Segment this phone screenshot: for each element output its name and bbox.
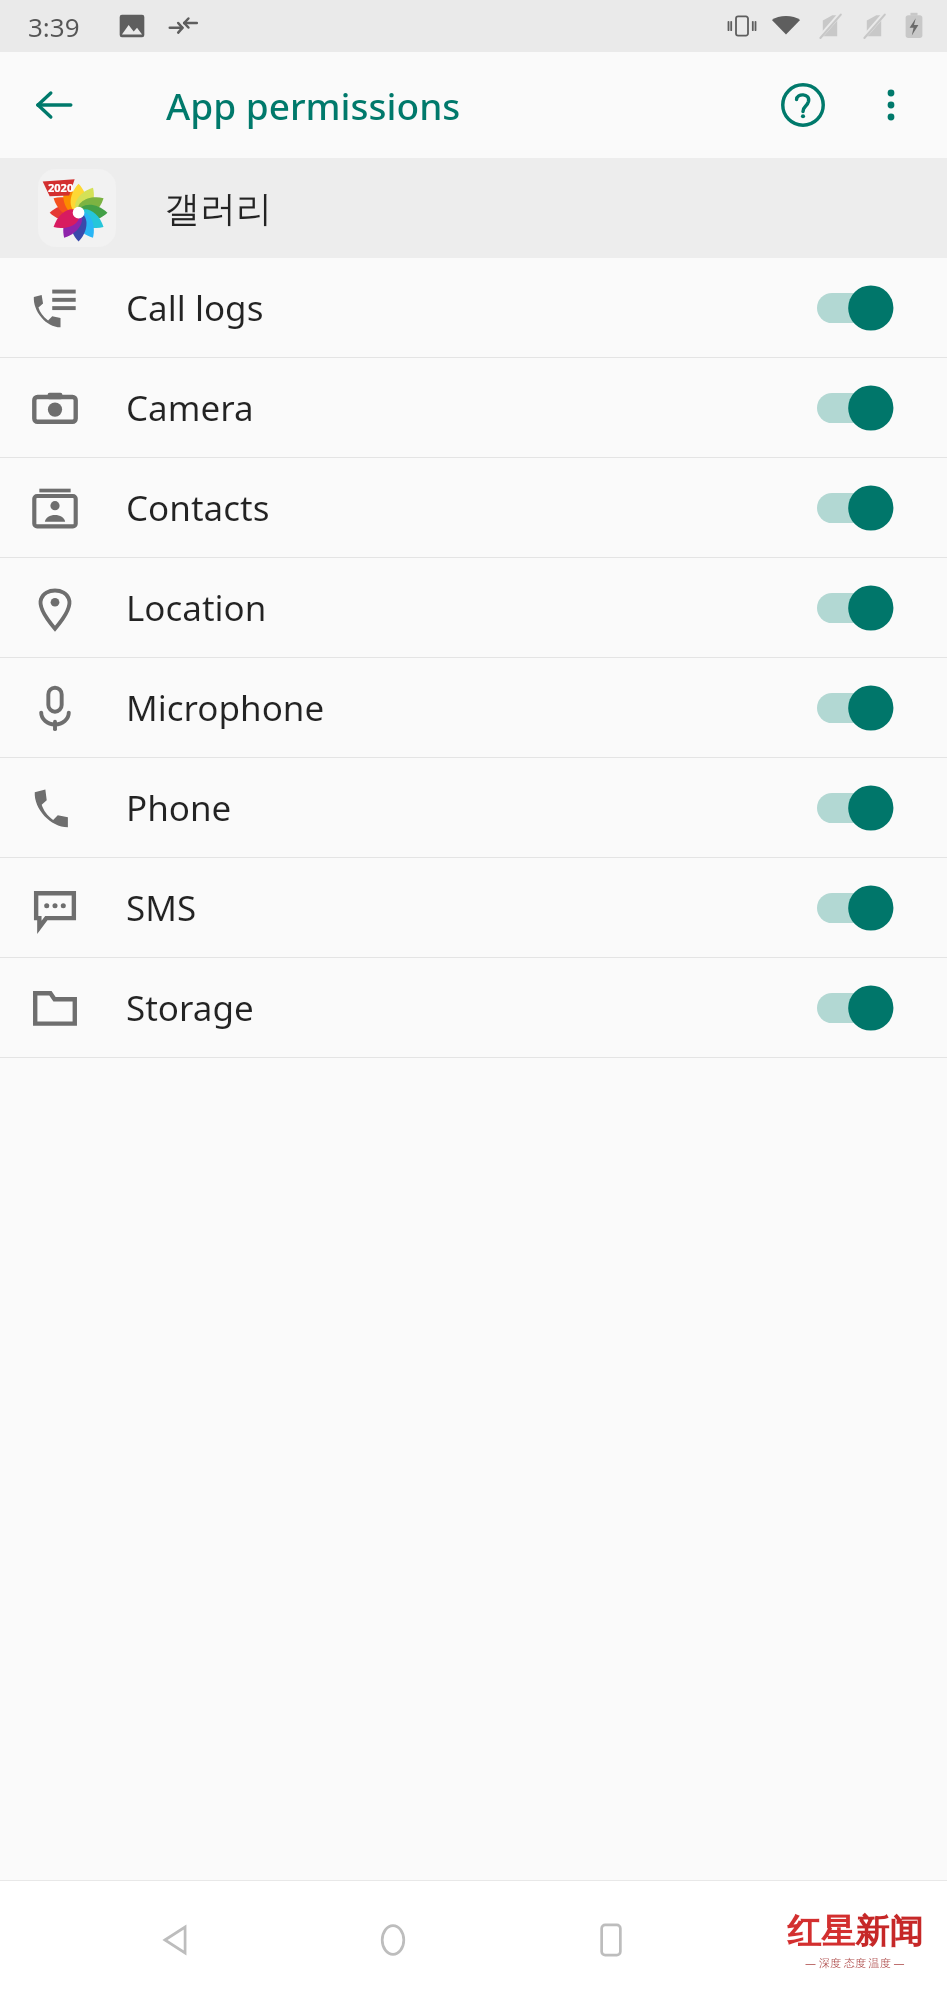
staticText: Phone (126, 784, 232, 832)
button[interactable]: More options (855, 69, 927, 141)
button[interactable]: Contacts (0, 458, 947, 557)
button[interactable]: Microphone (0, 658, 947, 757)
button[interactable] (817, 879, 909, 937)
button[interactable] (817, 979, 909, 1037)
staticText: Contacts (126, 484, 270, 532)
button[interactable]: Phone (0, 758, 947, 857)
button[interactable]: Back (133, 1898, 217, 1982)
staticText: App permissions (166, 80, 461, 130)
staticText: SMS (126, 884, 197, 932)
staticText: 갤러리 (164, 186, 272, 231)
staticText: Call logs (126, 284, 264, 332)
staticText: Storage (126, 984, 254, 1032)
button[interactable]: Call logs (0, 258, 947, 357)
button[interactable] (817, 779, 909, 837)
staticText: 新闻 (855, 1910, 923, 1953)
button[interactable]: Recent apps (569, 1898, 653, 1982)
button[interactable] (817, 379, 909, 437)
staticText: Microphone (126, 684, 325, 732)
staticText: — 深度 态度 温度 — (805, 1955, 905, 1970)
button[interactable]: Back (18, 69, 90, 141)
button[interactable]: 2020 (0, 158, 947, 258)
staticText: Location (126, 584, 267, 632)
button[interactable] (817, 479, 909, 537)
button[interactable]: Camera (0, 358, 947, 457)
button[interactable]: Storage (0, 958, 947, 1057)
button[interactable]: SMS (0, 858, 947, 957)
button[interactable] (817, 679, 909, 737)
staticText: 红星 (787, 1910, 855, 1953)
staticText: Camera (126, 384, 254, 432)
staticText: 2020 (48, 180, 74, 195)
button[interactable] (817, 579, 909, 637)
button[interactable]: Help (767, 69, 839, 141)
button[interactable]: Home (351, 1898, 435, 1982)
staticText: 3:39 (28, 9, 80, 44)
button[interactable]: Location (0, 558, 947, 657)
button[interactable] (817, 279, 909, 337)
